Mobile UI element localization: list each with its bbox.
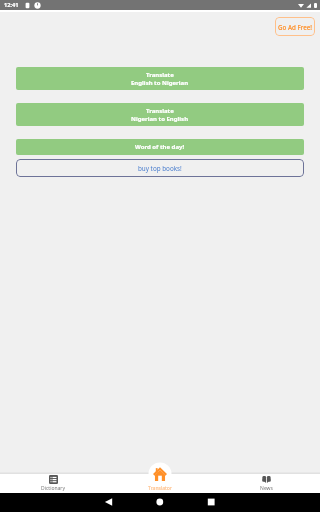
button[interactable]: Home <box>151 493 170 512</box>
button[interactable]: News <box>213 463 320 493</box>
staticText: Translate <box>146 107 174 115</box>
button[interactable]: Translate <box>16 67 304 90</box>
staticText: Translator <box>148 485 172 492</box>
staticText: Dictionary <box>41 485 65 492</box>
staticText: Translate <box>146 71 174 79</box>
button[interactable]: Go Ad Free! <box>275 17 315 36</box>
button[interactable]: Dictionary <box>0 463 106 493</box>
staticText: buy top books! <box>138 164 182 173</box>
button[interactable]: Translator <box>106 463 213 493</box>
staticText: News <box>260 485 273 492</box>
staticText: Nigerian to English <box>131 115 189 123</box>
staticText: Word of the day! <box>135 143 185 151</box>
button[interactable]: buy top books! <box>16 159 304 177</box>
button[interactable]: Translate <box>16 103 304 126</box>
staticText: 12:41 <box>4 1 19 9</box>
button[interactable]: Word of the day! <box>16 139 304 155</box>
button[interactable]: Recent apps <box>202 493 221 512</box>
button[interactable]: Back <box>100 493 119 512</box>
staticText: Go Ad Free! <box>278 23 312 31</box>
staticText: English to Nigerian <box>131 79 189 87</box>
